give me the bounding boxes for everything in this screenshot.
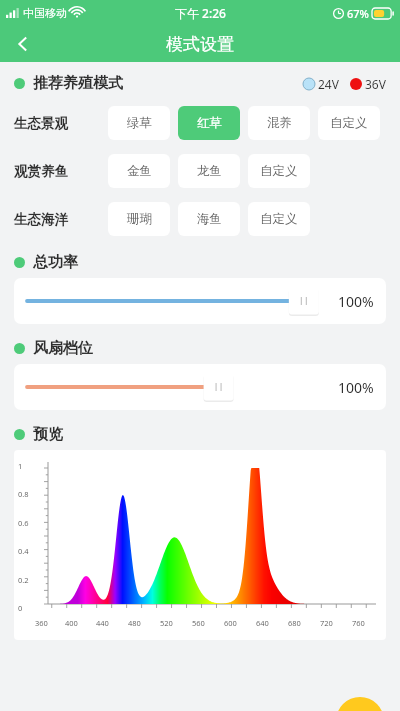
staticText: 观赏养鱼 <box>14 163 68 180</box>
staticText: 0 <box>18 603 23 613</box>
staticText: 中国移动 <box>23 6 67 20</box>
button[interactable]: 自定义 <box>318 106 380 140</box>
button[interactable]: Back <box>3 26 43 62</box>
staticText: 100% <box>338 292 374 311</box>
staticText: 560 <box>192 618 205 628</box>
staticText: 模式设置 <box>166 34 234 55</box>
staticText: 生态景观 <box>14 115 68 132</box>
staticText: 混养 <box>267 115 292 131</box>
button[interactable]: 混养 <box>248 106 310 140</box>
button[interactable]: Confirm <box>336 697 384 711</box>
button[interactable]: 自定义 <box>248 154 310 188</box>
staticText: 金鱼 <box>127 163 152 179</box>
staticText: 440 <box>96 618 109 628</box>
staticText: 400 <box>65 618 78 628</box>
staticText: 0.8 <box>18 489 29 499</box>
staticText: 推荐养殖模式 <box>33 74 123 93</box>
button[interactable]: 自定义 <box>248 202 310 236</box>
staticText: 680 <box>288 618 301 628</box>
staticText: 1 <box>18 461 23 471</box>
button[interactable]: 龙鱼 <box>178 154 240 188</box>
staticText: 520 <box>160 618 173 628</box>
staticText: 360 <box>35 618 48 628</box>
staticText: 67% <box>347 6 369 21</box>
staticText: 红草 <box>197 115 222 131</box>
staticText: 下午 2:26 <box>175 5 226 21</box>
staticText: 绿草 <box>127 115 152 131</box>
staticText: 自定义 <box>260 211 298 227</box>
button[interactable]: Slider <box>26 364 320 410</box>
staticText: 生态海洋 <box>14 211 68 228</box>
staticText: 风扇档位 <box>33 339 93 358</box>
staticText: 0.6 <box>18 518 29 528</box>
staticText: 600 <box>224 618 237 628</box>
staticText: 100% <box>338 378 374 397</box>
staticText: 自定义 <box>260 163 298 179</box>
staticText: 760 <box>352 618 365 628</box>
staticText: 720 <box>320 618 333 628</box>
staticText: 自定义 <box>330 115 368 131</box>
staticText: 0.2 <box>18 575 29 585</box>
button[interactable]: 金鱼 <box>108 154 170 188</box>
staticText: 珊瑚 <box>127 211 152 227</box>
staticText: 预览 <box>33 425 63 444</box>
staticText: 0.4 <box>18 546 29 556</box>
staticText: 36V <box>365 76 386 92</box>
button[interactable]: 珊瑚 <box>108 202 170 236</box>
staticText: 总功率 <box>33 253 78 272</box>
button[interactable]: 海鱼 <box>178 202 240 236</box>
staticText: 640 <box>256 618 269 628</box>
staticText: 海鱼 <box>197 211 222 227</box>
staticText: 龙鱼 <box>197 163 222 179</box>
staticText: 24V <box>318 76 339 92</box>
button[interactable]: 红草 <box>178 106 240 140</box>
button[interactable]: Slider <box>26 278 320 324</box>
button[interactable]: 绿草 <box>108 106 170 140</box>
staticText: 480 <box>128 618 141 628</box>
